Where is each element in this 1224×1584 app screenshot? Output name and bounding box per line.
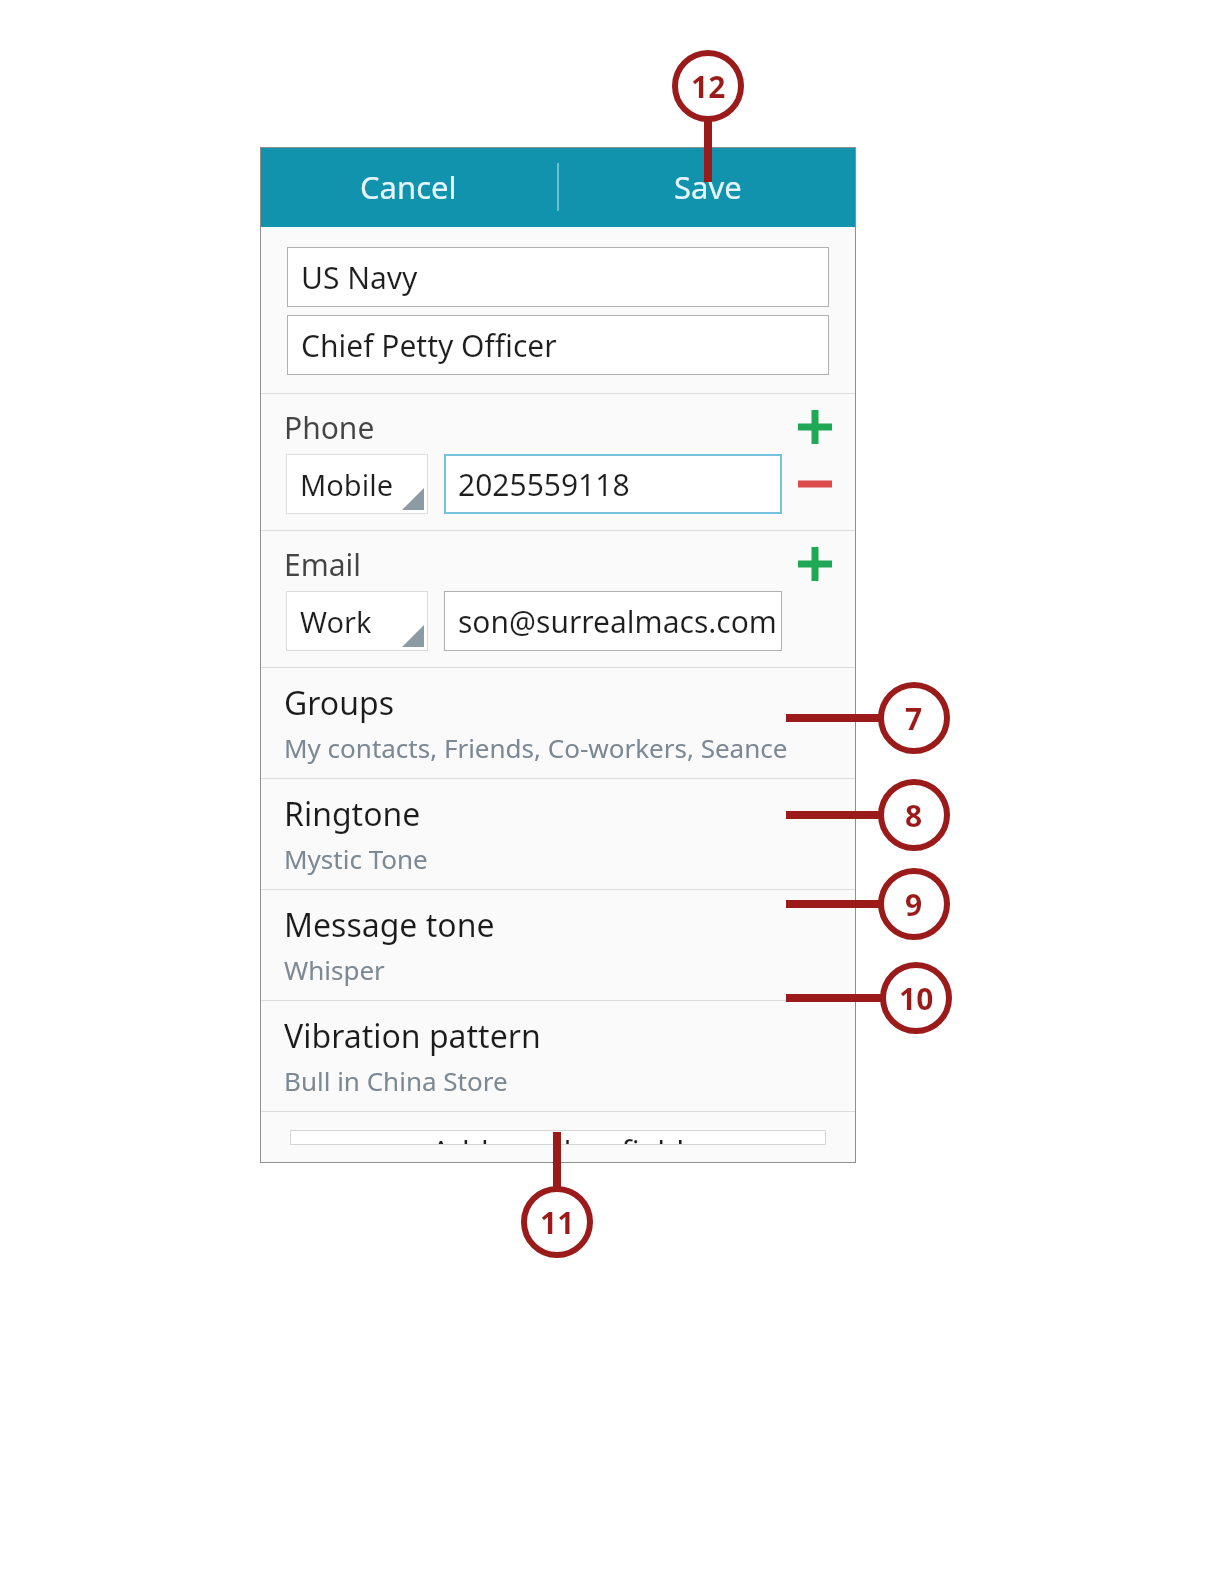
staticText: 10 [899, 978, 934, 1019]
staticText: Groups [284, 681, 395, 725]
button[interactable]: Message tone [260, 890, 856, 1000]
staticText: 9 [905, 884, 923, 925]
button[interactable]: Add [794, 543, 836, 585]
staticText: Ringtone [284, 792, 421, 836]
button[interactable]: Remove [794, 463, 836, 505]
button[interactable]: Chief Petty Officer [287, 315, 829, 375]
button[interactable]: Work [286, 591, 428, 651]
staticText: Phone [284, 407, 794, 448]
staticText: US Navy [301, 257, 418, 298]
staticText: Cancel [360, 166, 457, 208]
staticText: Chief Petty Officer [301, 325, 557, 366]
button[interactable]: Save [559, 147, 856, 227]
staticText: son@surrealmacs.com [458, 601, 777, 642]
staticText: 8 [905, 795, 923, 836]
button[interactable]: Add [794, 406, 836, 448]
staticText: Work [300, 602, 372, 641]
button[interactable]: Vibration pattern [260, 1001, 856, 1111]
staticText: 7 [905, 698, 923, 739]
staticText: Email [284, 544, 794, 585]
button[interactable]: Ringtone [260, 779, 856, 889]
staticText: Whisper [284, 952, 385, 987]
staticText: Mystic Tone [284, 841, 428, 876]
button[interactable]: Groups [260, 668, 856, 778]
staticText: 11 [540, 1202, 575, 1243]
button[interactable]: 2025559118 [444, 454, 782, 514]
staticText: Save [674, 166, 742, 208]
staticText: 2025559118 [458, 464, 630, 505]
staticText: Bull in China Store [284, 1063, 508, 1098]
button[interactable]: US Navy [287, 247, 829, 307]
button[interactable]: Add another field [290, 1130, 826, 1145]
button[interactable]: Mobile [286, 454, 428, 514]
staticText: Vibration pattern [284, 1014, 541, 1058]
button[interactable]: Cancel [260, 147, 557, 227]
staticText: Mobile [300, 465, 394, 504]
staticText: Message tone [284, 903, 495, 947]
staticText: 12 [691, 66, 726, 107]
staticText: Add another field [431, 1130, 685, 1145]
button[interactable]: son@surrealmacs.com [444, 591, 782, 651]
staticText: My contacts, Friends, Co-workers, Seance… [284, 730, 832, 765]
